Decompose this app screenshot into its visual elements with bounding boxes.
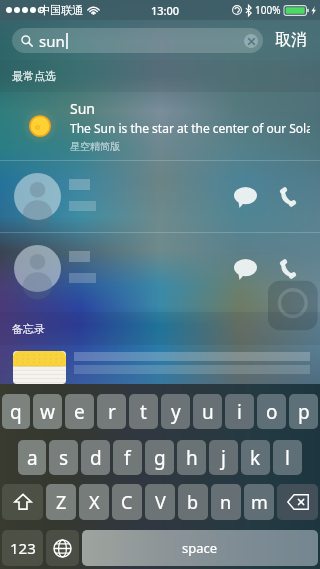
button[interactable]: space xyxy=(82,530,318,566)
button[interactable]: Shift xyxy=(2,484,43,520)
staticText: b xyxy=(187,490,199,515)
staticText: q xyxy=(10,399,22,425)
staticText: e xyxy=(74,399,85,425)
staticText: u xyxy=(202,399,214,425)
button[interactable]: a xyxy=(18,440,46,475)
staticText: a xyxy=(27,445,38,471)
button[interactable]: m xyxy=(244,484,274,520)
button[interactable]: Message xyxy=(231,255,259,283)
button[interactable]: e xyxy=(65,394,94,429)
button[interactable]: j xyxy=(209,440,238,475)
staticText: X xyxy=(89,490,100,515)
staticText: y xyxy=(171,399,181,425)
staticText: 中国联通 xyxy=(39,3,83,17)
staticText: r xyxy=(108,399,116,425)
staticText: w xyxy=(40,399,55,425)
staticText: Z xyxy=(56,490,67,515)
button[interactable]: s xyxy=(49,440,78,475)
button[interactable]: h xyxy=(177,440,206,475)
button[interactable]: o xyxy=(257,394,286,429)
button[interactable]: Call xyxy=(274,183,302,211)
staticText: sun xyxy=(39,31,65,51)
staticText: s xyxy=(59,445,69,471)
staticText: space xyxy=(182,539,218,557)
button[interactable]: V xyxy=(145,484,175,520)
staticText: 备忘录 xyxy=(12,322,45,336)
button[interactable]: Z xyxy=(46,484,76,520)
button[interactable]: p xyxy=(289,394,318,429)
staticText: 取消 xyxy=(275,30,307,50)
button[interactable]: q xyxy=(2,394,30,429)
button[interactable]: sun xyxy=(12,28,263,53)
button[interactable]: Call xyxy=(274,255,302,283)
staticText: 13:00 xyxy=(151,3,180,18)
button[interactable]: Clear xyxy=(244,34,258,48)
button[interactable]: u xyxy=(193,394,222,429)
staticText: l xyxy=(285,445,290,471)
button[interactable]: y xyxy=(161,394,190,429)
button[interactable]: C xyxy=(112,484,142,520)
button[interactable]: g xyxy=(145,440,174,475)
staticText: o xyxy=(266,399,278,425)
button[interactable]: r xyxy=(97,394,126,429)
staticText: f xyxy=(124,445,131,471)
button[interactable]: Message xyxy=(231,183,259,211)
staticText: m xyxy=(251,490,268,515)
staticText: 星空精简版 xyxy=(70,140,120,153)
staticText: h xyxy=(186,445,198,471)
staticText: p xyxy=(298,399,310,425)
button[interactable]: Message xyxy=(0,161,320,232)
staticText: g xyxy=(154,445,166,471)
button[interactable]: 123 xyxy=(2,530,43,566)
button[interactable]: 取消 xyxy=(274,26,308,54)
button[interactable]: n xyxy=(211,484,241,520)
staticText: The Sun is the star at the center of our… xyxy=(70,120,310,136)
button[interactable]: Message xyxy=(0,233,320,304)
button[interactable]: d xyxy=(81,440,110,475)
staticText: V xyxy=(155,490,166,515)
button[interactable]: Sun xyxy=(0,92,320,160)
staticText: Sun xyxy=(70,99,95,118)
button[interactable] xyxy=(0,345,320,384)
button[interactable]: t xyxy=(129,394,158,429)
button[interactable]: k xyxy=(241,440,270,475)
staticText: 123 xyxy=(10,538,36,558)
staticText: C xyxy=(121,490,133,515)
button[interactable]: Switch language xyxy=(46,530,79,566)
staticText: n xyxy=(220,490,232,515)
button[interactable]: b xyxy=(178,484,208,520)
staticText: i xyxy=(237,399,242,425)
button[interactable]: l xyxy=(273,440,302,475)
button[interactable]: w xyxy=(33,394,62,429)
staticText: 100% xyxy=(255,3,281,17)
button[interactable]: X xyxy=(79,484,109,520)
staticText: j xyxy=(221,445,226,471)
button[interactable]: i xyxy=(225,394,254,429)
staticText: 最常点选 xyxy=(12,69,56,83)
button[interactable]: Backspace xyxy=(277,484,318,520)
button[interactable]: f xyxy=(113,440,142,475)
staticText: d xyxy=(90,445,102,471)
staticText: k xyxy=(250,445,261,471)
staticText: t xyxy=(140,399,147,425)
